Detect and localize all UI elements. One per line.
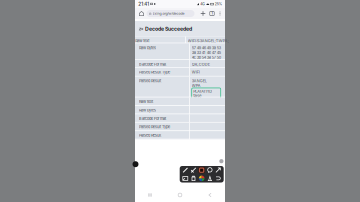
button[interactable]: Colour bbox=[198, 175, 205, 182]
staticText: QR_CODE bbox=[192, 62, 210, 67]
staticText: 4c 3b 54 3a 57 50 bbox=[192, 55, 221, 60]
button[interactable]: Back bbox=[195, 188, 225, 202]
staticText: 3ANGEL bbox=[192, 79, 207, 83]
staticText: Parsed Result Type bbox=[139, 70, 170, 74]
button[interactable]: More options bbox=[216, 8, 223, 19]
staticText: Parsed Result bbox=[139, 133, 161, 138]
staticText: Raw text bbox=[135, 38, 149, 43]
staticText: Raw bytes bbox=[139, 45, 156, 50]
button[interactable]: Home bbox=[136, 8, 146, 19]
staticText: 57 49 46 49 3a 53 bbox=[192, 45, 221, 50]
button[interactable]: Undo bbox=[215, 175, 221, 182]
button[interactable]: Home bbox=[165, 188, 195, 202]
staticText: 4G bbox=[200, 2, 205, 6]
staticText: WIFI:S:3ANGEL;T:WPA; bbox=[188, 38, 229, 43]
button[interactable]: Speech bubble bbox=[207, 167, 213, 173]
button[interactable]: Delete bbox=[190, 175, 197, 182]
staticText: Barcode Format bbox=[139, 116, 166, 121]
staticText: 25% bbox=[215, 2, 222, 6]
staticText: Raw bytes bbox=[139, 108, 156, 112]
button[interactable]: Stamp bbox=[207, 175, 213, 182]
button[interactable]: Arrow bbox=[215, 167, 221, 173]
staticText: Raw text bbox=[139, 99, 153, 104]
button[interactable]: New tab bbox=[198, 8, 207, 19]
staticText: 3a 33 41 4e 47 45 bbox=[192, 50, 221, 55]
staticText: Decode Succeeded bbox=[145, 26, 192, 32]
staticText: Parsed Result bbox=[139, 79, 161, 83]
button[interactable]: Recents bbox=[135, 188, 165, 202]
staticText: Barcode Format bbox=[139, 62, 166, 67]
button[interactable]: Pen bbox=[182, 167, 189, 173]
staticText: false bbox=[193, 94, 201, 98]
staticText: PLATAT:HD bbox=[193, 89, 212, 94]
staticText: WIFI bbox=[192, 70, 200, 74]
staticText: zxing.org/w/decode bbox=[153, 11, 185, 16]
staticText: 21:41 bbox=[138, 1, 149, 7]
staticText: Parsed Result Type bbox=[139, 125, 170, 129]
button[interactable]: Crop bbox=[182, 175, 189, 182]
button[interactable]: Tabs bbox=[207, 8, 216, 19]
button[interactable]: Marker bbox=[190, 167, 197, 173]
button[interactable]: Rectangle bbox=[198, 167, 205, 173]
staticText: WPA bbox=[192, 83, 201, 88]
